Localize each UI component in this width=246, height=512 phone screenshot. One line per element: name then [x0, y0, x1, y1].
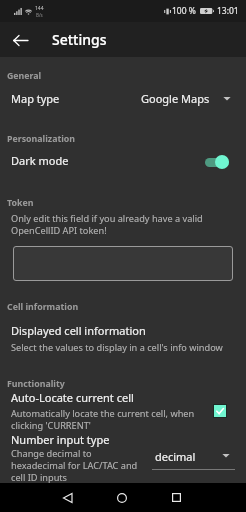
button[interactable]: Map type: [0, 84, 246, 112]
staticText: Select the values to display in a cell's…: [11, 341, 223, 354]
staticText: Functionality: [7, 378, 65, 390]
button[interactable]: API token: [13, 246, 233, 281]
staticText: Number input type: [11, 432, 110, 447]
staticText: decimal: [155, 449, 196, 464]
button[interactable]: Navigate up: [5, 25, 35, 55]
button[interactable]: Auto-Locate current cell: [0, 390, 246, 431]
staticText: 13:01: [217, 5, 239, 17]
staticText: Dark mode: [11, 153, 69, 168]
button[interactable]: Displayed cell information: [0, 323, 246, 354]
button[interactable]: Auto-Locate current cell: [212, 403, 227, 418]
button[interactable]: Dark mode: [0, 146, 246, 174]
staticText: Cell information: [7, 301, 79, 313]
button[interactable]: Back: [49, 483, 85, 512]
staticText: Google Maps: [141, 91, 210, 106]
staticText: 100 %: [172, 5, 196, 17]
button[interactable]: Number input type: [0, 432, 246, 483]
staticText: Displayed cell information: [11, 323, 146, 338]
staticText: Personalization: [7, 133, 76, 145]
staticText: B/s: [36, 12, 43, 18]
staticText: Only edit this field if you already have…: [11, 212, 203, 236]
staticText: Change decimal to hexadecimal for LAC/TA…: [11, 447, 138, 483]
staticText: Map type: [11, 91, 60, 106]
staticText: Settings: [52, 30, 107, 49]
button[interactable]: Home: [104, 483, 140, 512]
staticText: 144: [35, 5, 44, 12]
staticText: General: [7, 70, 42, 82]
staticText: Token: [7, 197, 34, 209]
staticText: Auto-Locate current cell: [11, 390, 134, 405]
button[interactable]: Recent apps: [158, 483, 194, 512]
staticText: Automatically locate the current cell, w…: [11, 407, 195, 431]
button[interactable]: decimal: [152, 449, 235, 470]
